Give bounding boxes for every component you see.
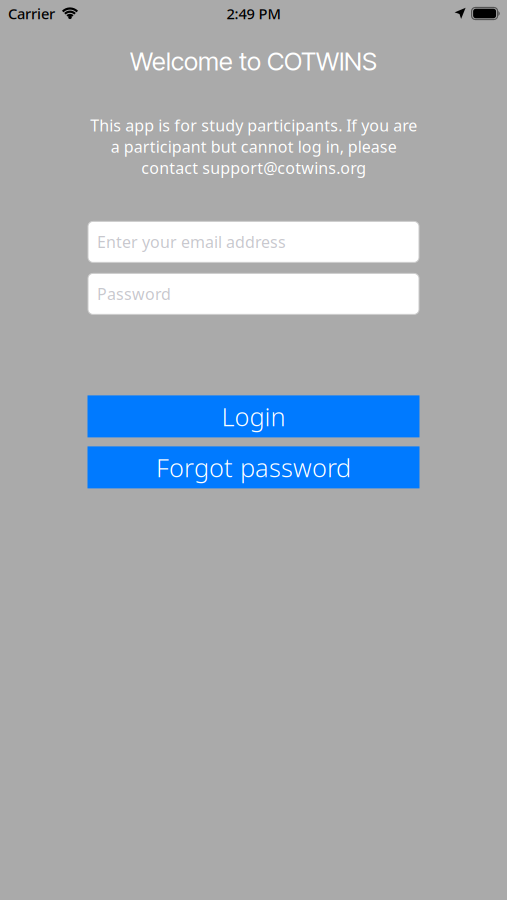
- staticText: Welcome to COTWINS: [130, 46, 377, 77]
- button[interactable]: Forgot password: [87, 446, 419, 488]
- button[interactable]: Login: [87, 395, 419, 437]
- staticText: 2:49 PM: [226, 4, 280, 23]
- textField[interactable]: Password: [88, 273, 419, 314]
- staticText: Login: [221, 400, 285, 433]
- staticText: Password: [97, 283, 171, 304]
- staticText: This app is for study participants. If y…: [90, 115, 417, 178]
- textField[interactable]: Enter your email address: [88, 221, 419, 262]
- staticText: Enter your email address: [97, 231, 286, 252]
- staticText: Forgot password: [156, 451, 351, 484]
- staticText: Carrier: [8, 4, 55, 23]
